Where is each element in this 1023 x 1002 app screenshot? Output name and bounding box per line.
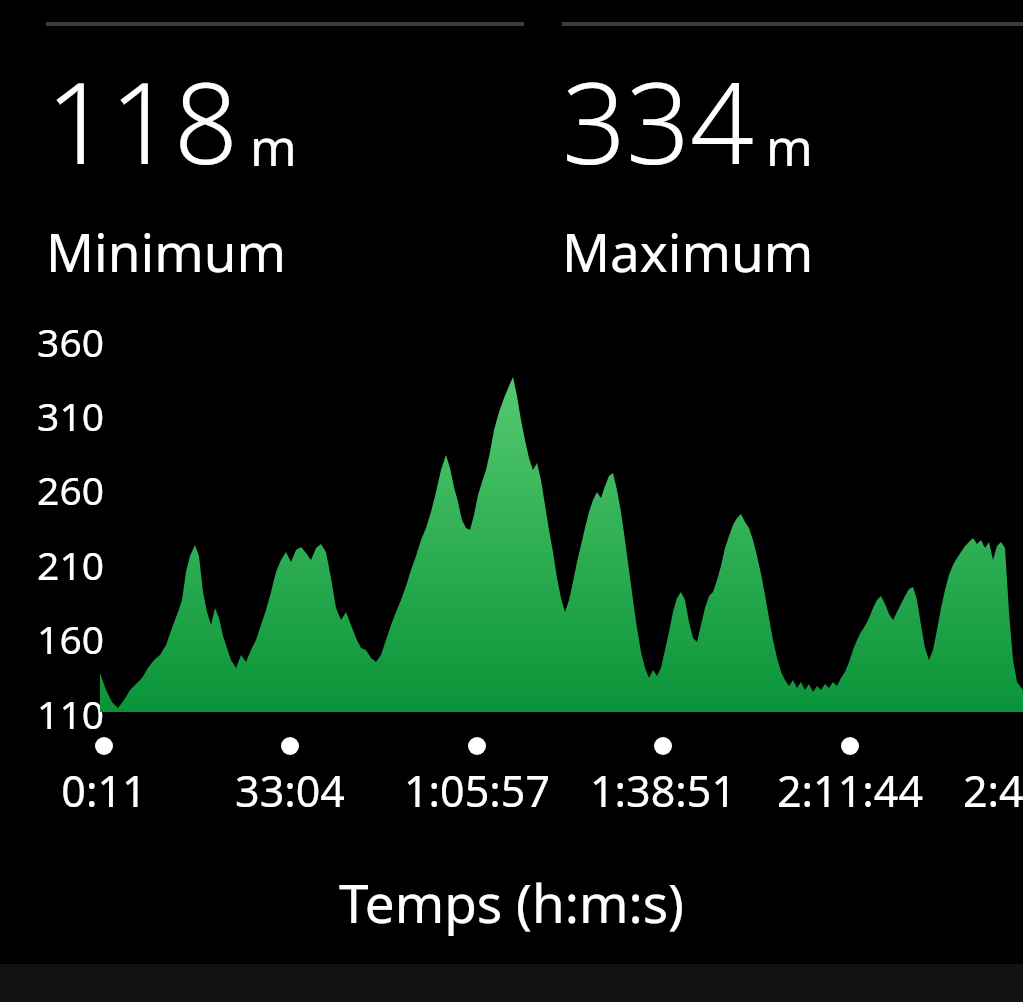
- staticText: m: [766, 113, 813, 181]
- staticText: 334: [562, 44, 754, 197]
- staticText: 260: [30, 463, 104, 516]
- staticText: 210: [30, 538, 104, 591]
- staticText: 2:44:37: [926, 761, 1023, 820]
- staticText: 33:04: [180, 761, 400, 820]
- staticText: 0:11: [0, 761, 214, 820]
- button[interactable]: Elevation chart: [100, 310, 1023, 710]
- button[interactable]: 118: [46, 44, 297, 287]
- staticText: Maximum: [562, 215, 814, 287]
- staticText: Temps (h:m:s): [0, 866, 1023, 938]
- staticText: 310: [30, 389, 104, 442]
- staticText: 110: [30, 687, 104, 740]
- staticText: 1:05:57: [367, 761, 587, 820]
- staticText: 360: [30, 315, 104, 368]
- staticText: 1:38:51: [553, 761, 773, 820]
- staticText: Minimum: [46, 215, 287, 287]
- staticText: 118: [46, 44, 238, 197]
- button[interactable]: 334: [562, 44, 814, 287]
- staticText: 2:11:44: [740, 761, 960, 820]
- staticText: 160: [30, 612, 104, 665]
- staticText: m: [250, 113, 297, 181]
